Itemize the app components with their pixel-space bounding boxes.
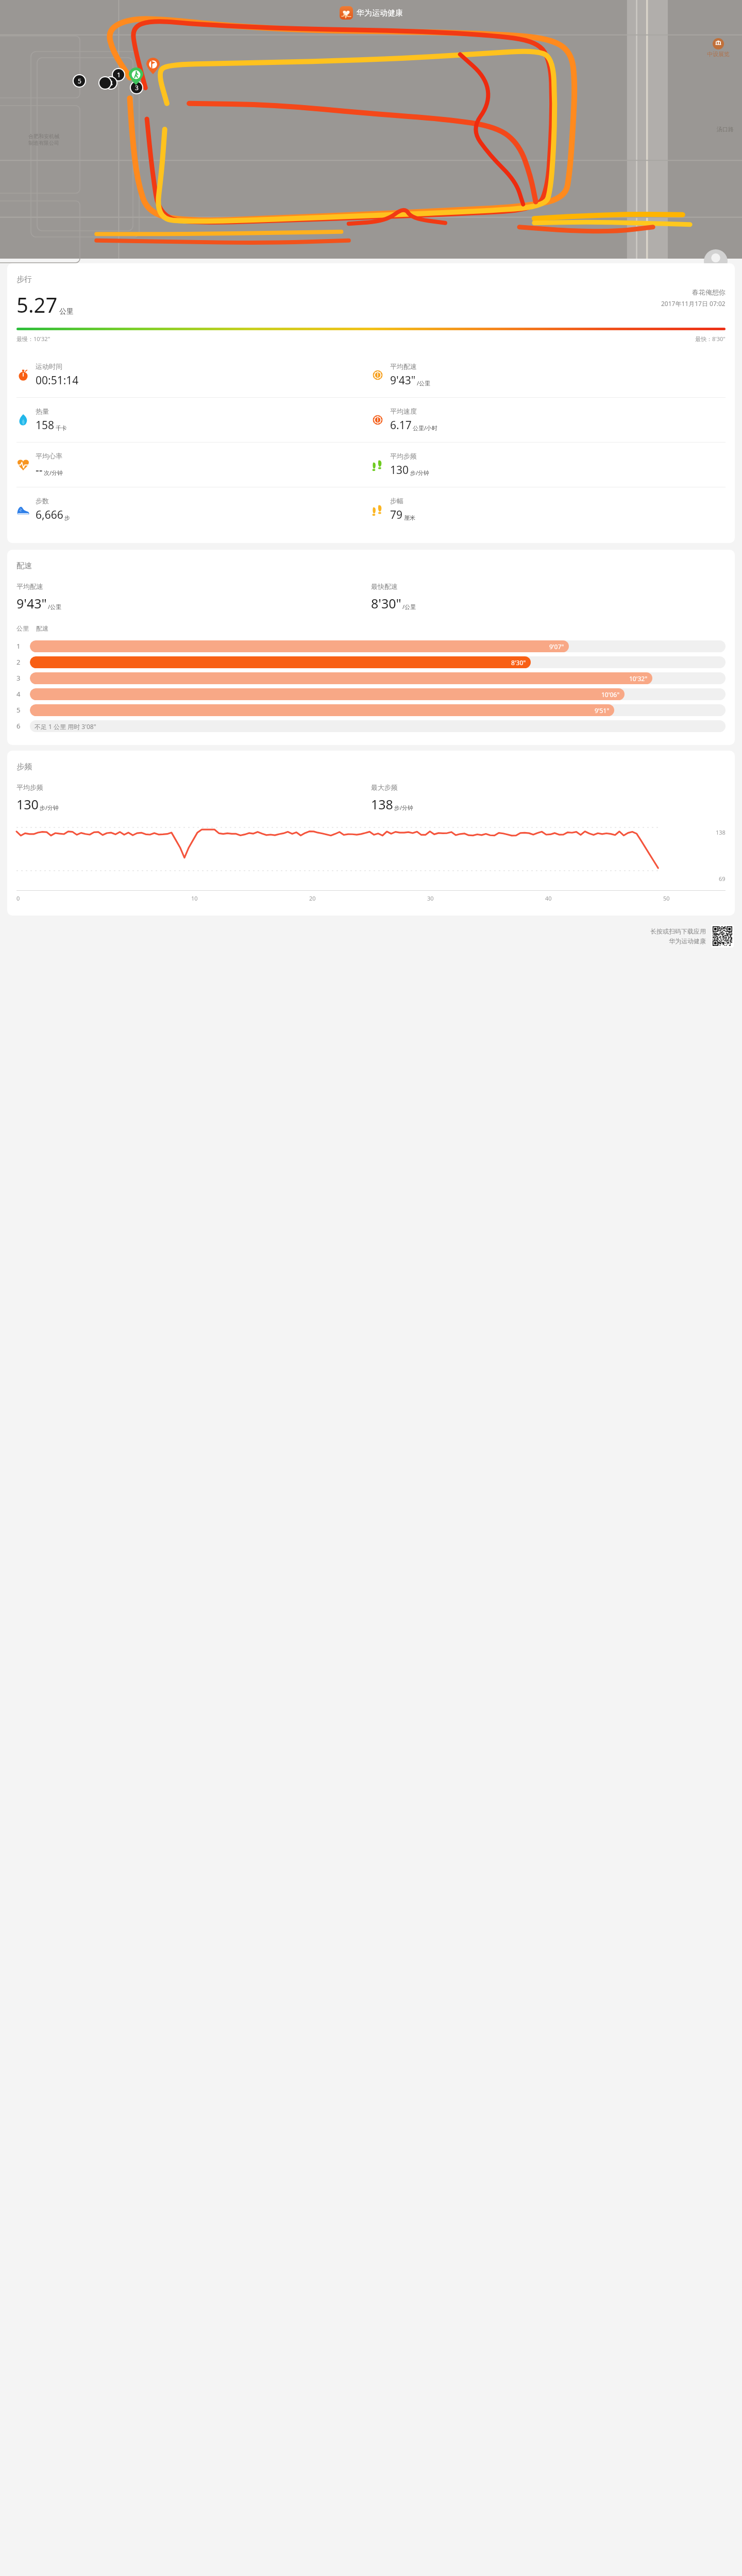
staticText: 中设展览 <box>707 50 730 58</box>
staticText: 8'30" <box>511 658 526 667</box>
staticText: 华为运动健康 <box>669 937 706 945</box>
staticText: 79 <box>390 507 403 522</box>
button[interactable]: 平均配速 <box>371 362 726 388</box>
button[interactable]: 1 <box>16 639 726 653</box>
staticText: 步/分钟 <box>40 804 59 811</box>
staticText: 最快配速 <box>371 582 398 590</box>
staticText: 3 <box>135 83 139 92</box>
staticText: 10'06" <box>601 690 620 699</box>
staticText: 6 <box>16 721 21 731</box>
staticText: -- <box>36 463 43 478</box>
staticText: 6.17 <box>390 418 412 433</box>
button[interactable]: 5 <box>74 75 85 87</box>
staticText: 不足 1 公里 用时 3'08" <box>35 722 96 731</box>
staticText: 130 <box>16 795 39 813</box>
staticText: 步/分钟 <box>394 804 414 811</box>
staticText: 4 <box>16 689 21 699</box>
button[interactable]: 平均步频 <box>371 452 726 478</box>
staticText: 2 <box>16 657 21 667</box>
staticText: 50 <box>663 894 670 902</box>
button[interactable]: 4 <box>16 687 726 701</box>
staticText: 配速 <box>16 561 32 571</box>
staticText: 4 <box>109 79 113 87</box>
staticText: 厘米 <box>404 514 415 521</box>
staticText: 公里 <box>16 624 29 632</box>
staticText: 3 <box>16 673 21 683</box>
staticText: 69 <box>719 875 726 883</box>
staticText: 8'30" <box>371 595 401 612</box>
button[interactable]: 2 <box>16 655 726 669</box>
staticText: 长按或扫码下载应用 <box>650 927 706 935</box>
staticText: 40 <box>545 894 552 902</box>
button[interactable]: 3 <box>131 82 142 93</box>
staticText: 9'07" <box>549 642 564 651</box>
staticText: 0 <box>16 894 20 902</box>
button[interactable]: Profile <box>704 249 728 273</box>
staticText: 最慢：10'32" <box>16 335 50 343</box>
staticText: 春花俺想你 <box>692 288 726 296</box>
staticText: 平均步频 <box>390 452 417 460</box>
button[interactable]: 平均心率 <box>16 452 371 478</box>
staticText: /公里 <box>402 603 416 611</box>
staticText: 次/分钟 <box>44 469 63 477</box>
button[interactable]: 步幅 <box>371 497 726 522</box>
staticText: 10'32" <box>629 674 648 683</box>
staticText: 步幅 <box>390 497 403 505</box>
button[interactable]: 3 <box>16 671 726 685</box>
staticText: 步 <box>64 514 70 521</box>
staticText: 最快：8'30" <box>695 335 726 343</box>
staticText: 5.27 <box>16 291 58 318</box>
staticText: 平均心率 <box>36 452 62 460</box>
staticText: 汤口路 <box>717 126 734 133</box>
staticText: 9'43" <box>390 373 416 388</box>
button[interactable]: 1 <box>113 69 124 80</box>
staticText: 华为运动健康 <box>357 8 403 18</box>
staticText: 10 <box>191 894 198 902</box>
staticText: 平均步频 <box>16 783 43 791</box>
other: End point <box>146 58 160 74</box>
staticText: 步数 <box>36 497 49 505</box>
staticText: 158 <box>36 418 55 433</box>
staticText: 公里 <box>59 307 74 316</box>
staticText: 千卡 <box>56 425 67 432</box>
staticText: 6,666 <box>36 507 63 522</box>
staticText: 5 <box>16 705 21 715</box>
button[interactable]: 5 <box>16 703 726 717</box>
button[interactable]: 平均速度 <box>371 407 726 433</box>
staticText: 合肥和安机械 <box>28 133 59 140</box>
staticText: /公里 <box>48 603 62 611</box>
staticText: 2017年11月17日 07:02 <box>661 299 726 308</box>
staticText: 130 <box>390 463 409 478</box>
staticText: 平均配速 <box>16 582 43 590</box>
staticText: 5 <box>78 77 81 85</box>
staticText: 平均速度 <box>390 407 417 415</box>
staticText: 9'51" <box>595 706 610 715</box>
staticText: 制造有限公司 <box>28 140 59 146</box>
button[interactable]: 步数 <box>16 497 371 522</box>
staticText: 00:51:14 <box>36 373 79 388</box>
button[interactable]: QR code <box>713 926 732 946</box>
staticText: 运动时间 <box>36 362 62 370</box>
staticText: 步/分钟 <box>410 469 430 477</box>
staticText: 20 <box>309 894 316 902</box>
button[interactable]: 4 <box>105 77 116 89</box>
staticText: 步行 <box>16 275 32 284</box>
staticText: /公里 <box>417 379 431 387</box>
staticText: 1 <box>16 641 21 651</box>
button[interactable] <box>99 77 111 89</box>
staticText: 最大步频 <box>371 783 398 791</box>
staticText: 步频 <box>16 762 32 772</box>
staticText: 9'43" <box>16 595 47 612</box>
button[interactable]: 6 <box>16 719 726 733</box>
staticText: 138 <box>371 795 393 813</box>
other: Start point <box>129 67 143 85</box>
staticText: 配速 <box>36 624 48 632</box>
staticText: 公里/小时 <box>413 424 438 432</box>
staticText: 138 <box>716 828 726 836</box>
staticText: 平均配速 <box>390 362 417 370</box>
button[interactable]: 运动时间 <box>16 362 371 388</box>
staticText: 30 <box>427 894 434 902</box>
staticText: 1 <box>117 71 121 79</box>
button[interactable]: 热量 <box>16 407 371 433</box>
staticText: 热量 <box>36 407 49 415</box>
